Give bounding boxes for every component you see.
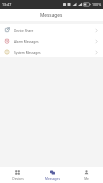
button[interactable]: Device Share bbox=[0, 24, 103, 35]
staticText: System Messages bbox=[14, 51, 41, 55]
button[interactable]: Devices bbox=[0, 167, 35, 183]
staticText: Me bbox=[84, 177, 89, 181]
button[interactable]: Me bbox=[69, 167, 103, 183]
staticText: Alarm Messages bbox=[14, 40, 39, 44]
button[interactable]: System Messages bbox=[0, 46, 103, 57]
staticText: Device Share bbox=[14, 29, 34, 33]
staticText: 13:47 bbox=[2, 2, 12, 7]
staticText: 100% bbox=[92, 2, 102, 7]
button[interactable]: Messages bbox=[35, 167, 69, 183]
staticText: Messages bbox=[40, 12, 63, 19]
staticText: Messages bbox=[45, 177, 60, 181]
staticText: Devices bbox=[12, 177, 24, 181]
button[interactable]: Alarm Messages bbox=[0, 35, 103, 46]
